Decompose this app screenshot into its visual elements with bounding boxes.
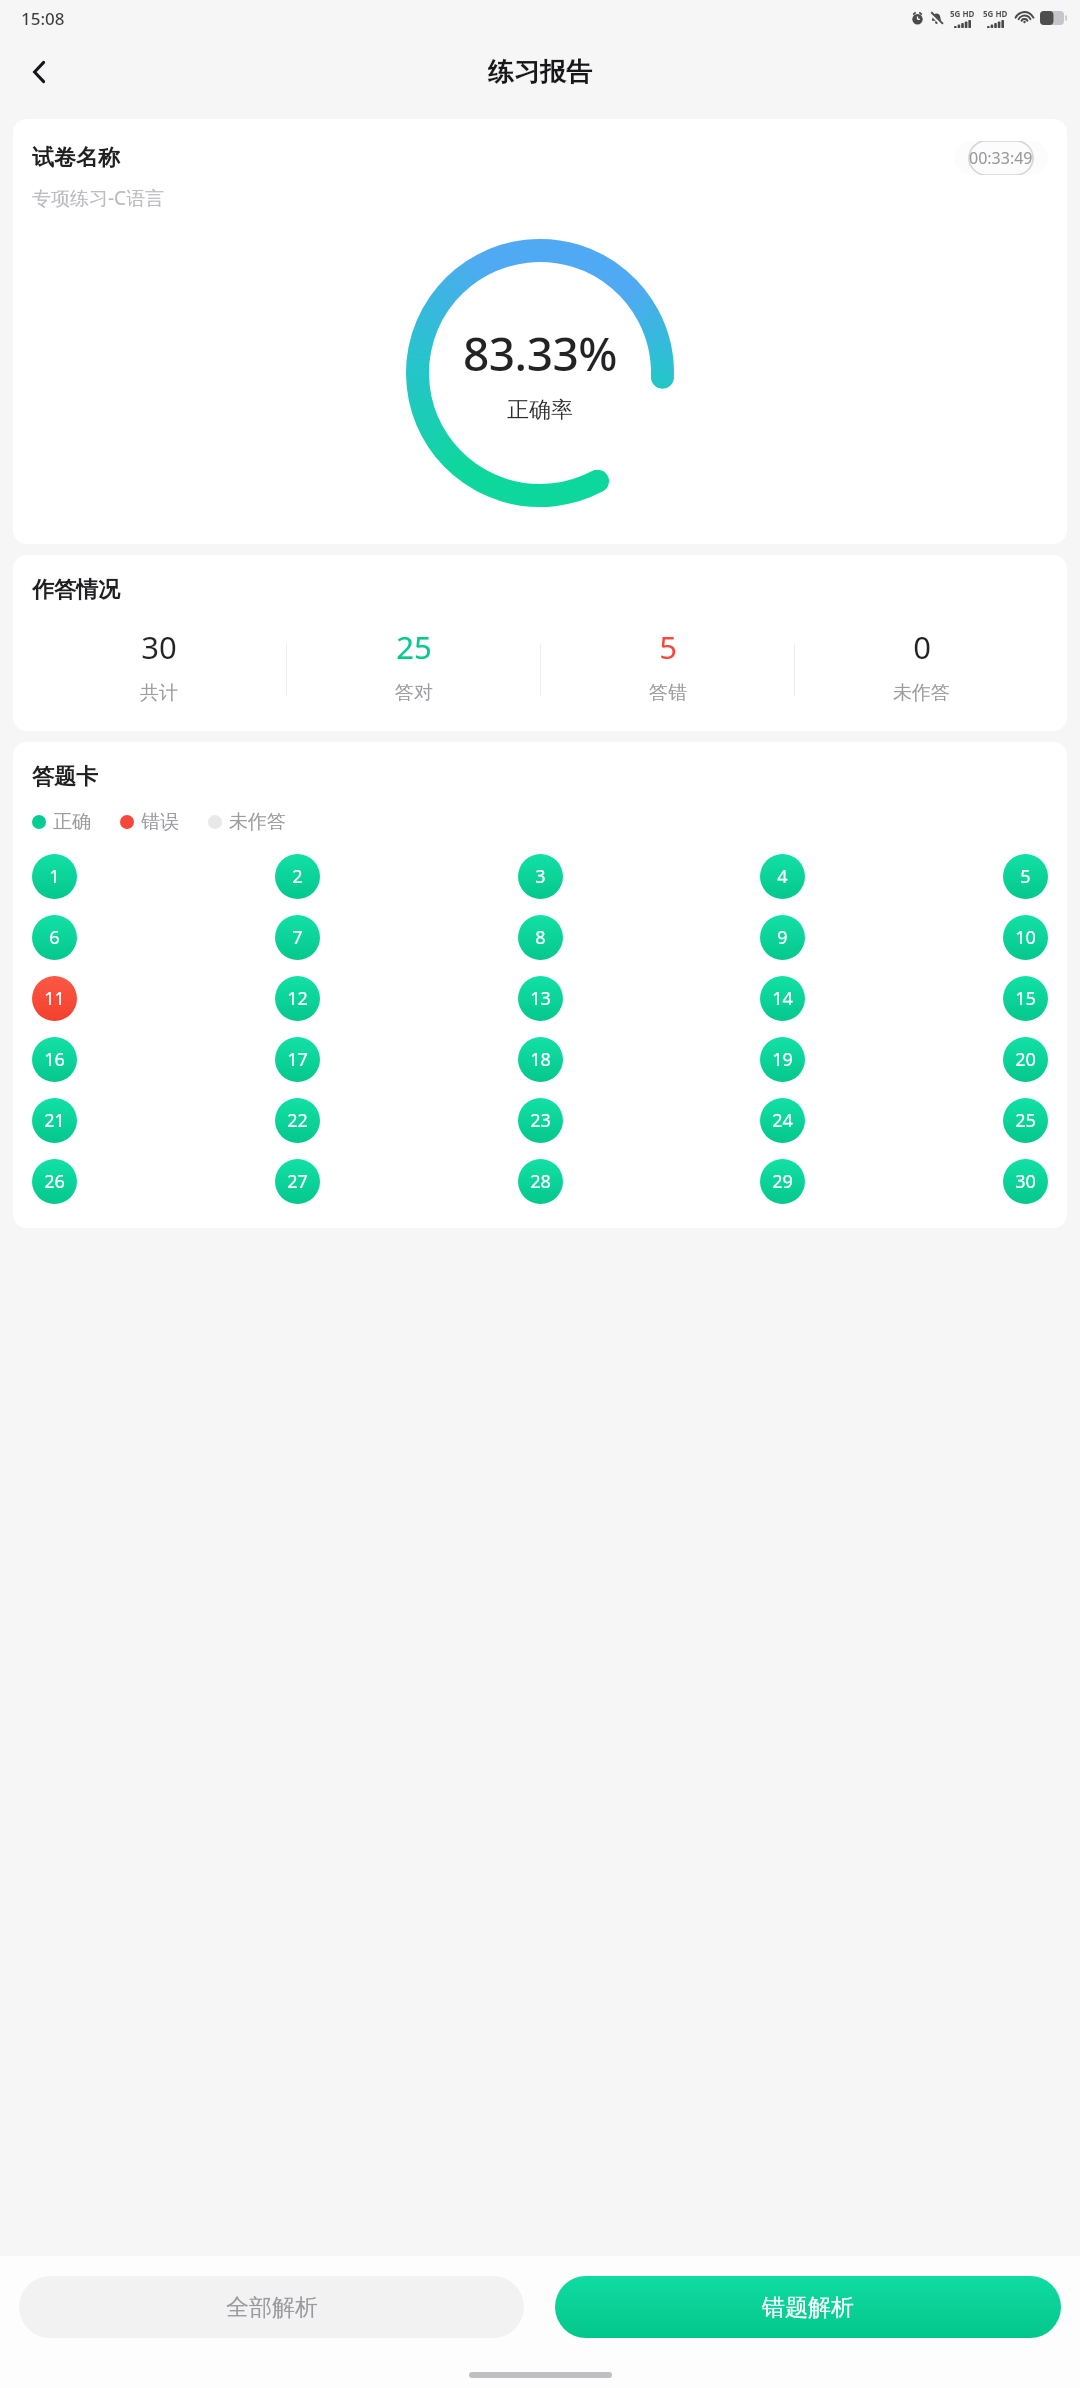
staticText: 25 <box>1015 1108 1036 1133</box>
button[interactable]: 17 <box>275 1037 320 1082</box>
staticText: 83.33% <box>463 322 617 385</box>
staticText: 7 <box>292 925 303 950</box>
button[interactable]: 23 <box>518 1098 563 1143</box>
button[interactable]: 11 <box>32 976 77 1021</box>
button[interactable]: 18 <box>518 1037 563 1082</box>
button[interactable]: 2 <box>275 854 320 899</box>
staticText: 16 <box>44 1047 65 1072</box>
staticText: 30 <box>141 626 177 668</box>
button[interactable]: 错题解析 <box>555 2276 1061 2338</box>
staticText: 未作答 <box>229 810 286 834</box>
button[interactable]: 3 <box>518 854 563 899</box>
staticText: 正确率 <box>507 396 573 424</box>
button[interactable]: 28 <box>518 1159 563 1204</box>
button[interactable]: 10 <box>1003 915 1048 960</box>
button[interactable]: 8 <box>518 915 563 960</box>
staticText: 13 <box>530 986 551 1011</box>
staticText: 27 <box>287 1169 308 1194</box>
button[interactable]: 21 <box>32 1098 77 1143</box>
button[interactable]: 0 <box>795 626 1048 705</box>
button[interactable]: 5 <box>1003 854 1048 899</box>
staticText: 未作答 <box>893 681 950 705</box>
button[interactable]: 全部解析 <box>19 2276 524 2338</box>
button[interactable]: 20 <box>1003 1037 1048 1082</box>
staticText: 作答情况 <box>32 576 120 604</box>
staticText: 答题卡 <box>32 763 98 791</box>
staticText: 5G HD <box>950 8 975 19</box>
staticText: 错题解析 <box>762 2293 854 2322</box>
staticText: 5 <box>1020 864 1031 889</box>
button[interactable]: 22 <box>275 1098 320 1143</box>
button[interactable]: 15 <box>1003 976 1048 1021</box>
button[interactable]: 27 <box>275 1159 320 1204</box>
staticText: 0 <box>913 626 931 668</box>
button[interactable]: 5 <box>541 626 794 705</box>
staticText: 练习报告 <box>488 56 592 89</box>
staticText: 错误 <box>141 810 179 834</box>
button[interactable]: 12 <box>275 976 320 1021</box>
staticText: 10 <box>1015 925 1036 950</box>
staticText: 19 <box>772 1047 793 1072</box>
button[interactable]: 30 <box>1003 1159 1048 1204</box>
staticText: 试卷名称 <box>32 144 954 172</box>
staticText: 答对 <box>395 681 433 705</box>
staticText: 14 <box>772 986 793 1011</box>
staticText: 21 <box>44 1108 65 1133</box>
button[interactable]: 14 <box>760 976 805 1021</box>
staticText: 20 <box>1015 1047 1036 1072</box>
button[interactable]: 作答情况 <box>13 555 1067 731</box>
button[interactable]: 1 <box>32 854 77 899</box>
staticText: 22 <box>287 1108 308 1133</box>
button[interactable]: 4 <box>760 854 805 899</box>
staticText: 11 <box>44 986 65 1011</box>
staticText: 答错 <box>649 681 687 705</box>
button[interactable]: 00:33:49 <box>954 141 1048 175</box>
staticText: 23 <box>530 1108 551 1133</box>
staticText: 4 <box>777 864 788 889</box>
staticText: 6 <box>49 925 60 950</box>
button[interactable]: 16 <box>32 1037 77 1082</box>
staticText: 15 <box>1015 986 1036 1011</box>
staticText: 全部解析 <box>226 2293 318 2322</box>
staticText: 12 <box>287 986 308 1011</box>
staticText: 26 <box>44 1169 65 1194</box>
staticText: 28 <box>530 1169 551 1194</box>
button[interactable]: 未作答 <box>208 810 286 834</box>
button[interactable]: 6 <box>32 915 77 960</box>
button[interactable]: 13 <box>518 976 563 1021</box>
staticText: 5 <box>659 626 677 668</box>
button[interactable]: 7 <box>275 915 320 960</box>
button[interactable]: 9 <box>760 915 805 960</box>
button[interactable]: 正确 <box>32 810 91 834</box>
staticText: 正确 <box>53 810 91 834</box>
button[interactable]: 25 <box>287 626 540 705</box>
staticText: 共计 <box>140 681 178 705</box>
button[interactable]: 29 <box>760 1159 805 1204</box>
button[interactable]: 25 <box>1003 1098 1048 1143</box>
button[interactable]: 30 <box>32 626 286 705</box>
staticText: 00:33:49 <box>969 147 1033 169</box>
staticText: 1 <box>49 864 60 889</box>
staticText: 18 <box>530 1047 551 1072</box>
staticText: 17 <box>287 1047 308 1072</box>
staticText: 30 <box>1015 1169 1036 1194</box>
button[interactable]: 19 <box>760 1037 805 1082</box>
staticText: 24 <box>772 1108 793 1133</box>
staticText: 15:08 <box>21 7 65 30</box>
staticText: 专项练习-C语言 <box>32 185 165 211</box>
staticText: 3 <box>535 864 546 889</box>
staticText: 25 <box>396 626 432 668</box>
button[interactable]: 26 <box>32 1159 77 1204</box>
button[interactable]: Back <box>12 44 68 100</box>
staticText: 5G HD <box>983 8 1008 19</box>
staticText: 8 <box>535 925 546 950</box>
button[interactable]: 试卷名称 <box>13 119 1067 544</box>
button[interactable]: 错误 <box>120 810 179 834</box>
staticText: 2 <box>292 864 303 889</box>
button[interactable]: 24 <box>760 1098 805 1143</box>
staticText: 9 <box>777 925 788 950</box>
staticText: 29 <box>772 1169 793 1194</box>
